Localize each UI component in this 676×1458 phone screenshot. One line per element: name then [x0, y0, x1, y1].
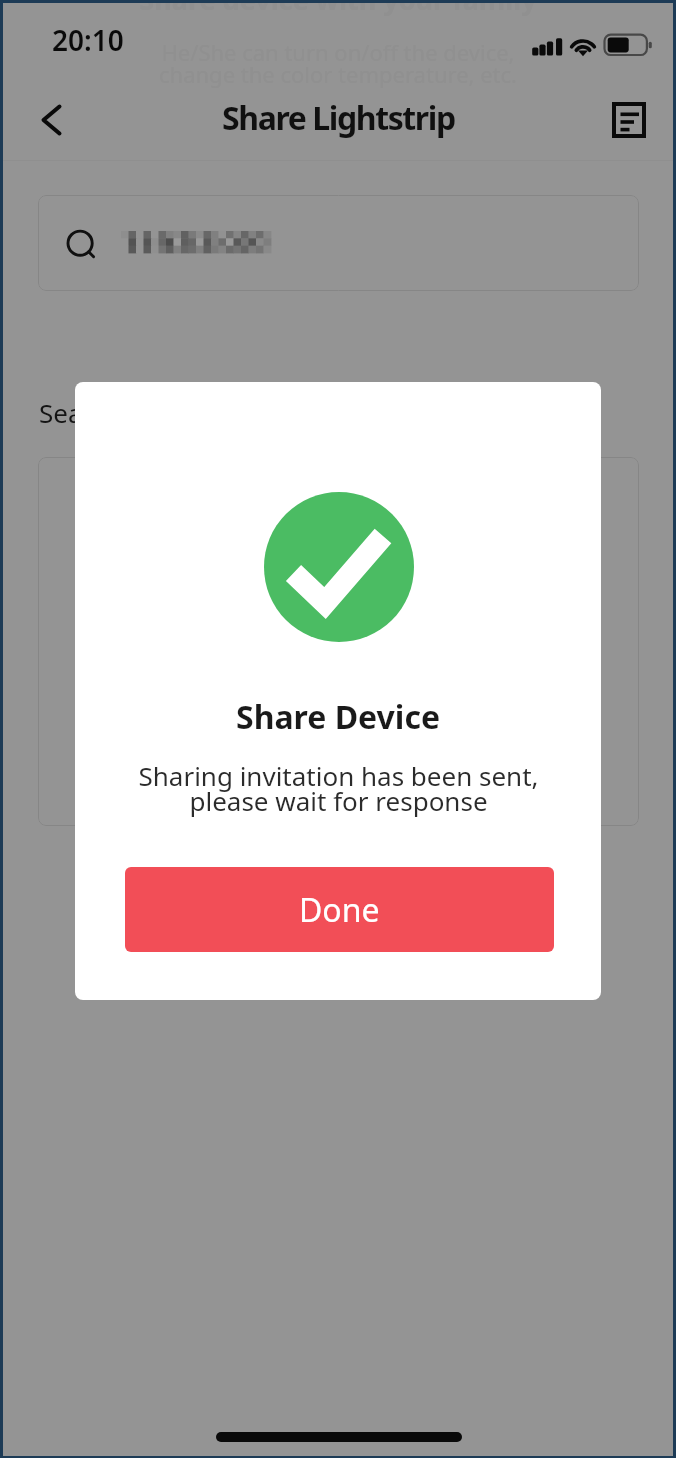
staticText: Search result: [39, 395, 198, 430]
button[interactable]: Sharing records: [603, 94, 655, 146]
button[interactable]: Back: [26, 95, 76, 145]
button[interactable]: Search: [38, 195, 639, 291]
button[interactable]: [38, 457, 639, 826]
staticText: 20:10: [52, 21, 124, 59]
staticText: Sharing invitation has been sent, please…: [138, 758, 539, 819]
staticText: Done: [299, 888, 380, 932]
staticText: Share Device: [236, 695, 441, 739]
staticText: Share Lightstrip: [222, 96, 455, 140]
button[interactable]: Done: [125, 867, 554, 952]
